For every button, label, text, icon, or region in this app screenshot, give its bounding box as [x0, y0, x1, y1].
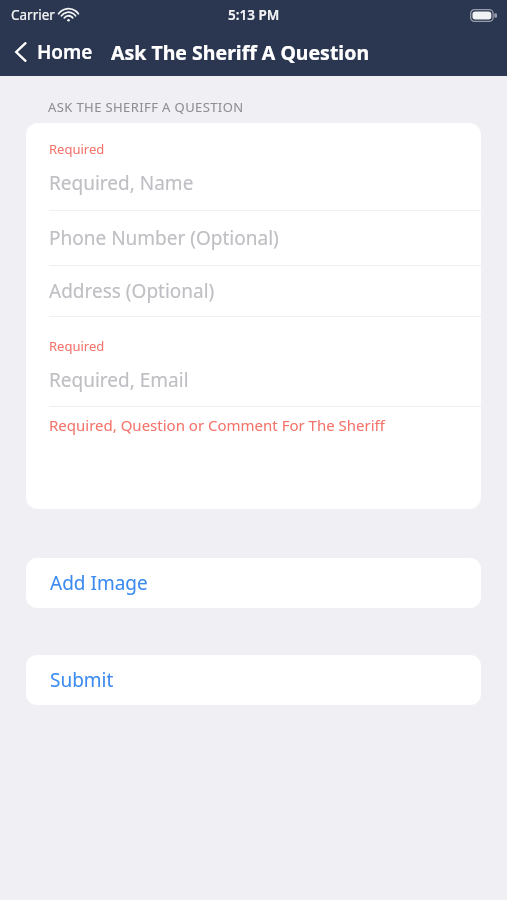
- staticText: Address (Optional): [49, 278, 215, 304]
- staticText: 5:13 PM: [228, 6, 280, 24]
- staticText: Required, Email: [49, 367, 189, 393]
- button[interactable]: Required: [26, 317, 481, 406]
- staticText: Submit: [50, 667, 114, 693]
- button[interactable]: Required, Question or Comment For The Sh…: [26, 407, 481, 507]
- staticText: Required: [49, 337, 105, 355]
- staticText: Required, Name: [49, 170, 194, 196]
- button[interactable]: Submit: [26, 655, 481, 705]
- staticText: Required, Question or Comment For The Sh…: [49, 415, 385, 435]
- staticText: Add Image: [50, 570, 148, 596]
- staticText: Ask The Sheriff A Question: [111, 39, 370, 66]
- button[interactable]: Address (Optional): [26, 266, 481, 316]
- button[interactable]: Add Image: [26, 558, 481, 608]
- button[interactable]: Back: [0, 35, 101, 69]
- button[interactable]: Phone Number (Optional): [26, 211, 481, 265]
- staticText: Phone Number (Optional): [49, 225, 279, 251]
- staticText: Carrier: [11, 6, 55, 24]
- staticText: Required: [49, 140, 105, 158]
- other: Back: [14, 41, 28, 63]
- staticText: Home: [37, 39, 93, 65]
- staticText: ASK THE SHERIFF A QUESTION: [48, 98, 244, 116]
- button[interactable]: Required: [26, 123, 481, 210]
